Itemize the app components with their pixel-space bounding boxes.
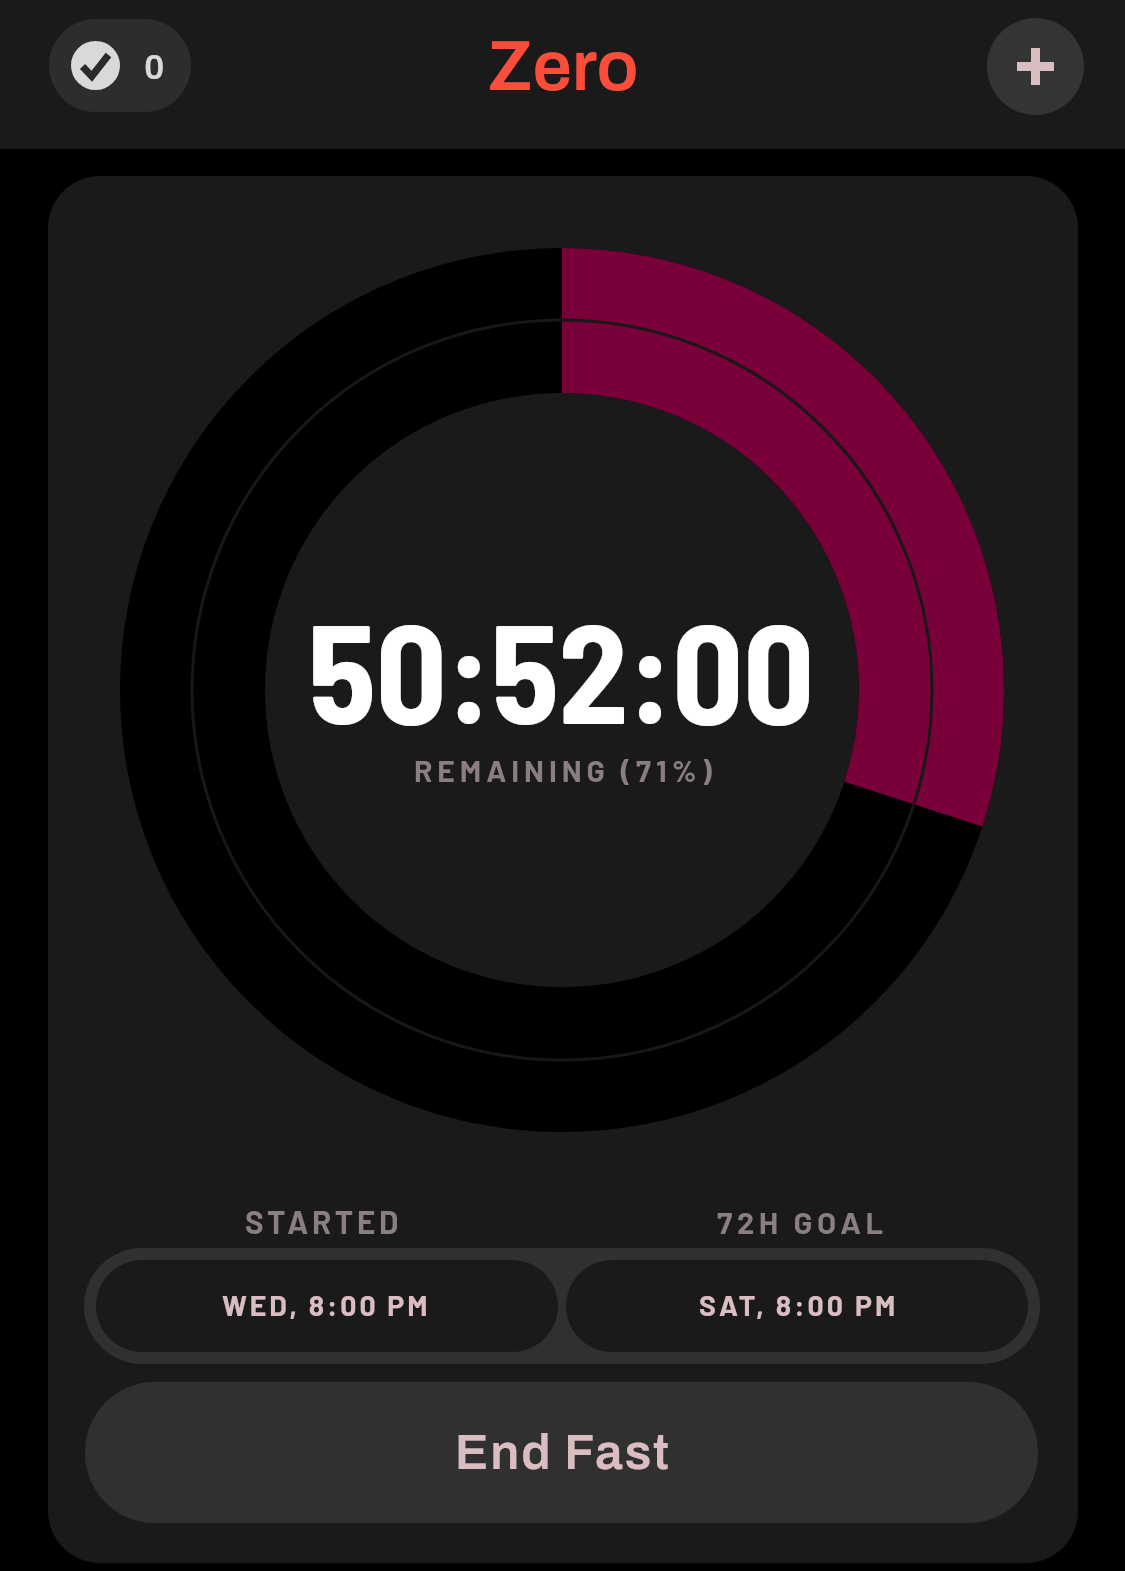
staticText: 0 (144, 48, 165, 87)
staticText: 50:52:00 (308, 585, 815, 752)
button[interactable]: Start new fast (987, 18, 1084, 115)
staticText: WED, 8:00 PM (222, 1288, 431, 1322)
staticText: SAT, 8:00 PM (699, 1288, 899, 1322)
button[interactable]: WED, 8:00 PM (96, 1260, 558, 1352)
staticText: STARTED (245, 1203, 403, 1241)
button[interactable]: 0 (49, 19, 191, 112)
button[interactable]: SAT, 8:00 PM (566, 1260, 1028, 1352)
staticText: REMAINING (71%) (414, 752, 717, 788)
staticText: Zero (488, 28, 639, 104)
staticText: 72H GOAL (717, 1203, 888, 1240)
button[interactable]: End Fast (85, 1382, 1038, 1523)
staticText: End Fast (455, 1425, 671, 1479)
